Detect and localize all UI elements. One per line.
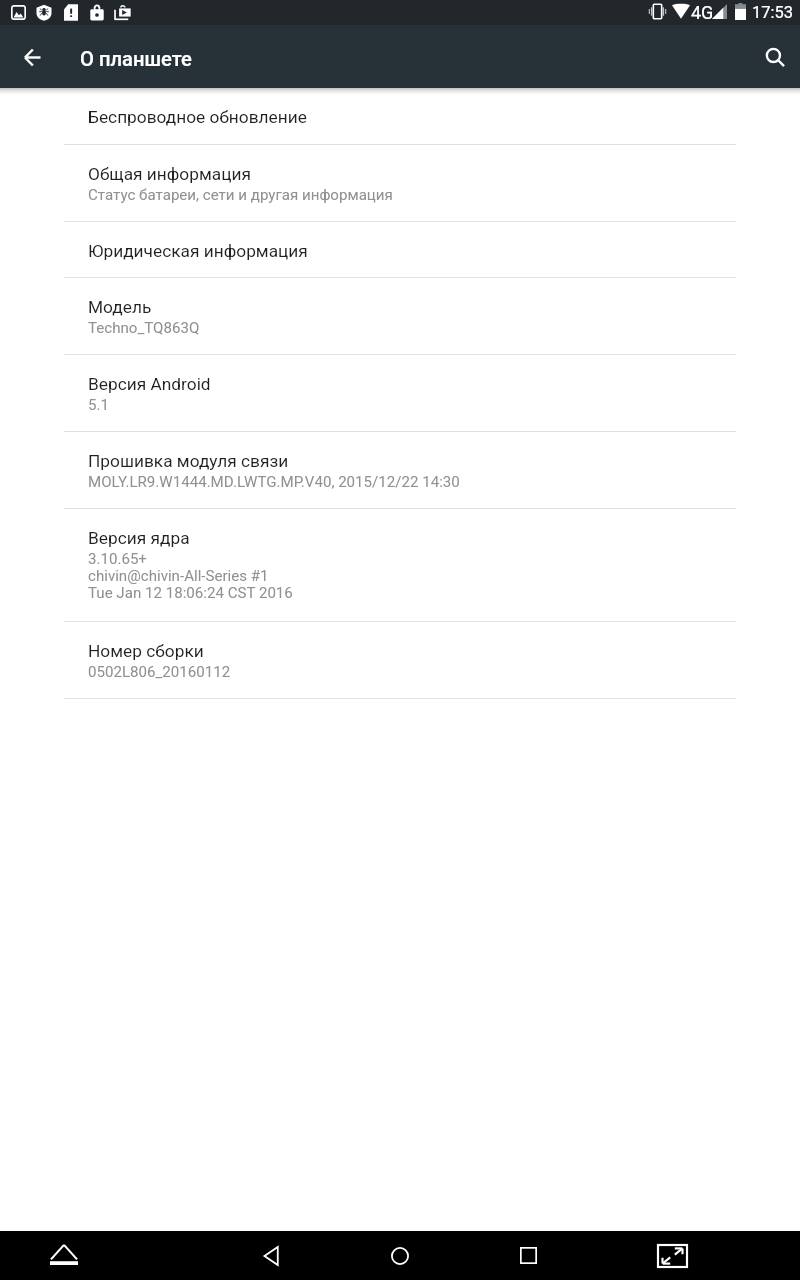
staticText: О планшете [80, 47, 192, 71]
button[interactable]: Search [751, 33, 799, 81]
staticText: Статус батареи, сети и другая информация [88, 186, 393, 204]
button[interactable]: Версия Android [0, 355, 800, 432]
staticText: Юридическая информация [88, 241, 308, 261]
button[interactable]: Юридическая информация [0, 222, 800, 278]
staticText: Версия Android [88, 374, 211, 394]
button[interactable]: Прошивка модуля связи [0, 432, 800, 509]
button[interactable]: Back [248, 1231, 296, 1280]
button[interactable]: Беспроводное обновление [0, 88, 800, 145]
button[interactable]: Версия ядра [0, 509, 800, 622]
staticText: 4G [691, 2, 714, 23]
button[interactable]: Screenshot [648, 1231, 696, 1280]
staticText: MOLY.LR9.W1444.MD.LWTG.MP.V40, 2015/12/2… [88, 473, 460, 491]
button[interactable]: Модель [0, 278, 800, 355]
staticText: Беспроводное обновление [88, 107, 307, 127]
button[interactable]: Recent apps [504, 1231, 552, 1280]
staticText: 5.1 [88, 396, 109, 414]
button[interactable]: Номер сборки [0, 622, 800, 699]
staticText: Модель [88, 297, 152, 317]
staticText: Прошивка модуля связи [88, 451, 289, 471]
staticText: Tue Jan 12 18:06:24 CST 2016 [88, 584, 293, 602]
staticText: 3.10.65+ [88, 550, 147, 568]
staticText: Версия ядра [88, 528, 190, 548]
button[interactable]: Home [376, 1231, 424, 1280]
button[interactable]: Menu [40, 1231, 88, 1280]
staticText: Techno_TQ863Q [88, 319, 200, 337]
staticText: chivin@chivin-All-Series #1 [88, 567, 269, 585]
staticText: Номер сборки [88, 641, 204, 661]
staticText: 17:53 [752, 3, 794, 22]
button[interactable]: Общая информация [0, 145, 800, 222]
button[interactable]: Back [8, 33, 56, 81]
staticText: Общая информация [88, 164, 251, 184]
staticText: 0502L806_20160112 [88, 663, 231, 681]
